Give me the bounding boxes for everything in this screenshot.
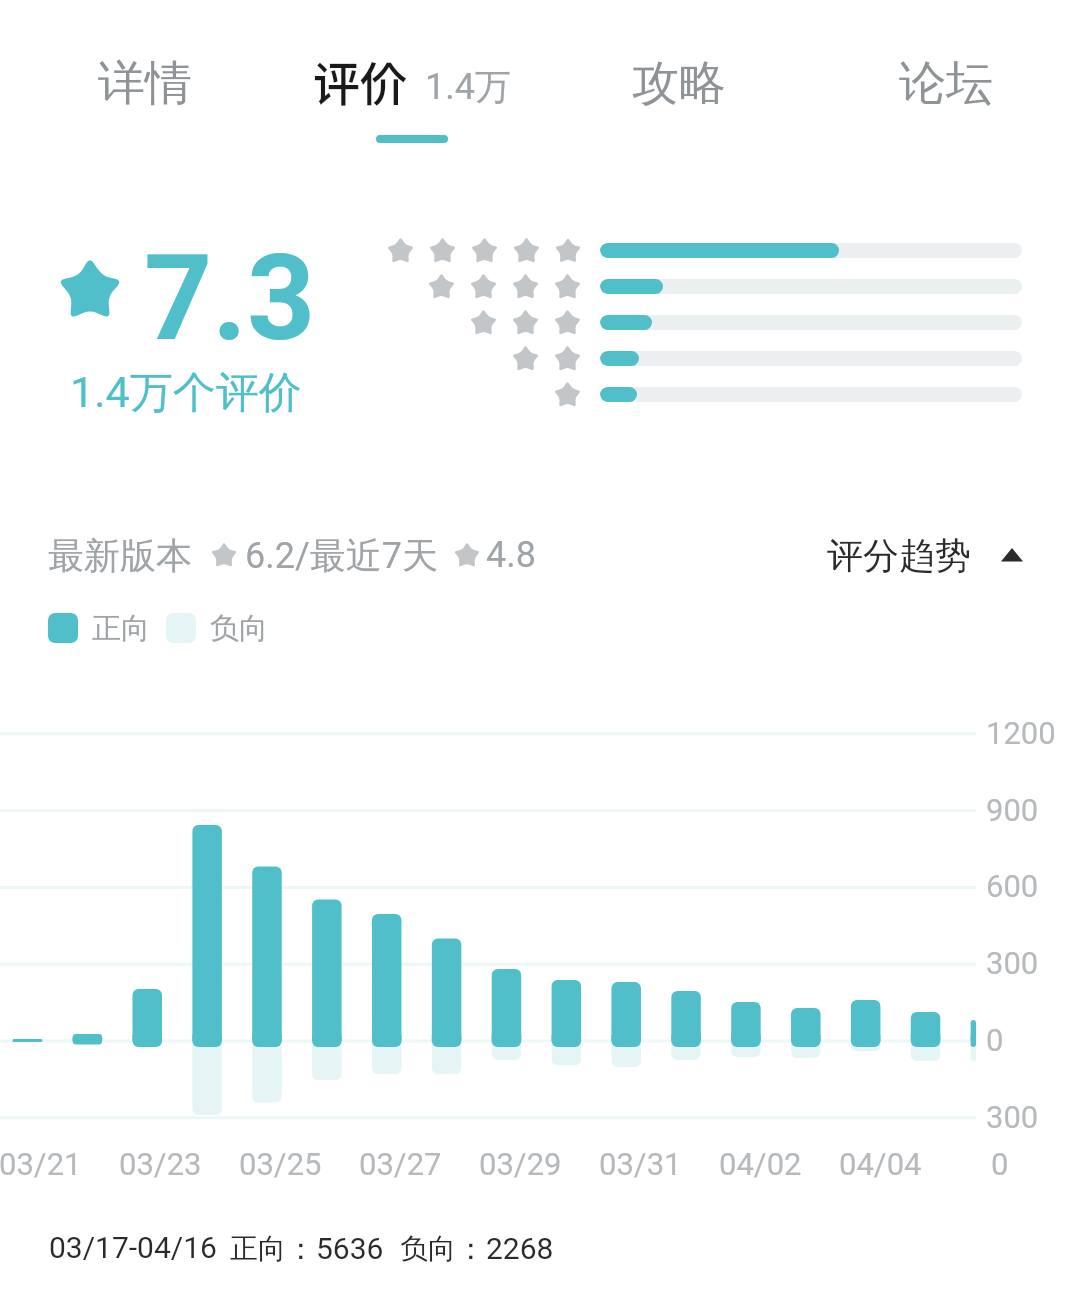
staticText: 03/31	[599, 1146, 682, 1182]
staticText: 0	[986, 1022, 1004, 1058]
staticText: 7.3	[144, 229, 316, 368]
staticText: 03/25	[239, 1146, 322, 1182]
staticText: 03/27	[359, 1146, 442, 1182]
staticText: 负向	[210, 610, 268, 647]
staticText: 03/23	[119, 1146, 202, 1182]
button[interactable]: 论坛	[812, 0, 1079, 152]
staticText: 负向	[400, 1231, 456, 1266]
staticText: 攻略	[632, 54, 726, 113]
staticText: 6.2/最近7天	[245, 533, 439, 578]
staticText: 1.4万	[425, 64, 511, 109]
staticText: 正向	[92, 610, 150, 647]
staticText: 评价	[313, 46, 407, 114]
staticText: 1200	[986, 715, 1056, 751]
staticText: 04/04	[839, 1146, 922, 1182]
other: Collapse rating trend	[1001, 544, 1023, 566]
button[interactable]: 详情	[12, 0, 278, 152]
staticText: 03/29	[479, 1146, 562, 1182]
staticText: ：5636	[286, 1230, 384, 1268]
staticText: 0	[991, 1146, 1009, 1182]
staticText: 最新版本	[48, 533, 192, 578]
staticText: 详情	[98, 54, 192, 113]
staticText: 评分趋势	[827, 533, 971, 578]
staticText: 300	[986, 945, 1039, 981]
staticText: 900	[986, 792, 1039, 828]
staticText: 03/17-04/16	[49, 1230, 217, 1265]
staticText: 04/02	[719, 1146, 802, 1182]
button[interactable]: 评价	[278, 0, 545, 152]
staticText: 300	[986, 1099, 1039, 1135]
staticText: 600	[986, 868, 1039, 904]
staticText: 1.4万个评价	[70, 366, 302, 420]
staticText: 03/21	[0, 1146, 82, 1182]
button[interactable]: 攻略	[545, 0, 812, 152]
button[interactable]: 评分趋势	[827, 522, 1023, 588]
staticText: 4.8	[486, 534, 536, 576]
staticText: 正向	[230, 1231, 286, 1266]
staticText: ：2268	[456, 1230, 554, 1268]
staticText: 论坛	[899, 54, 993, 113]
